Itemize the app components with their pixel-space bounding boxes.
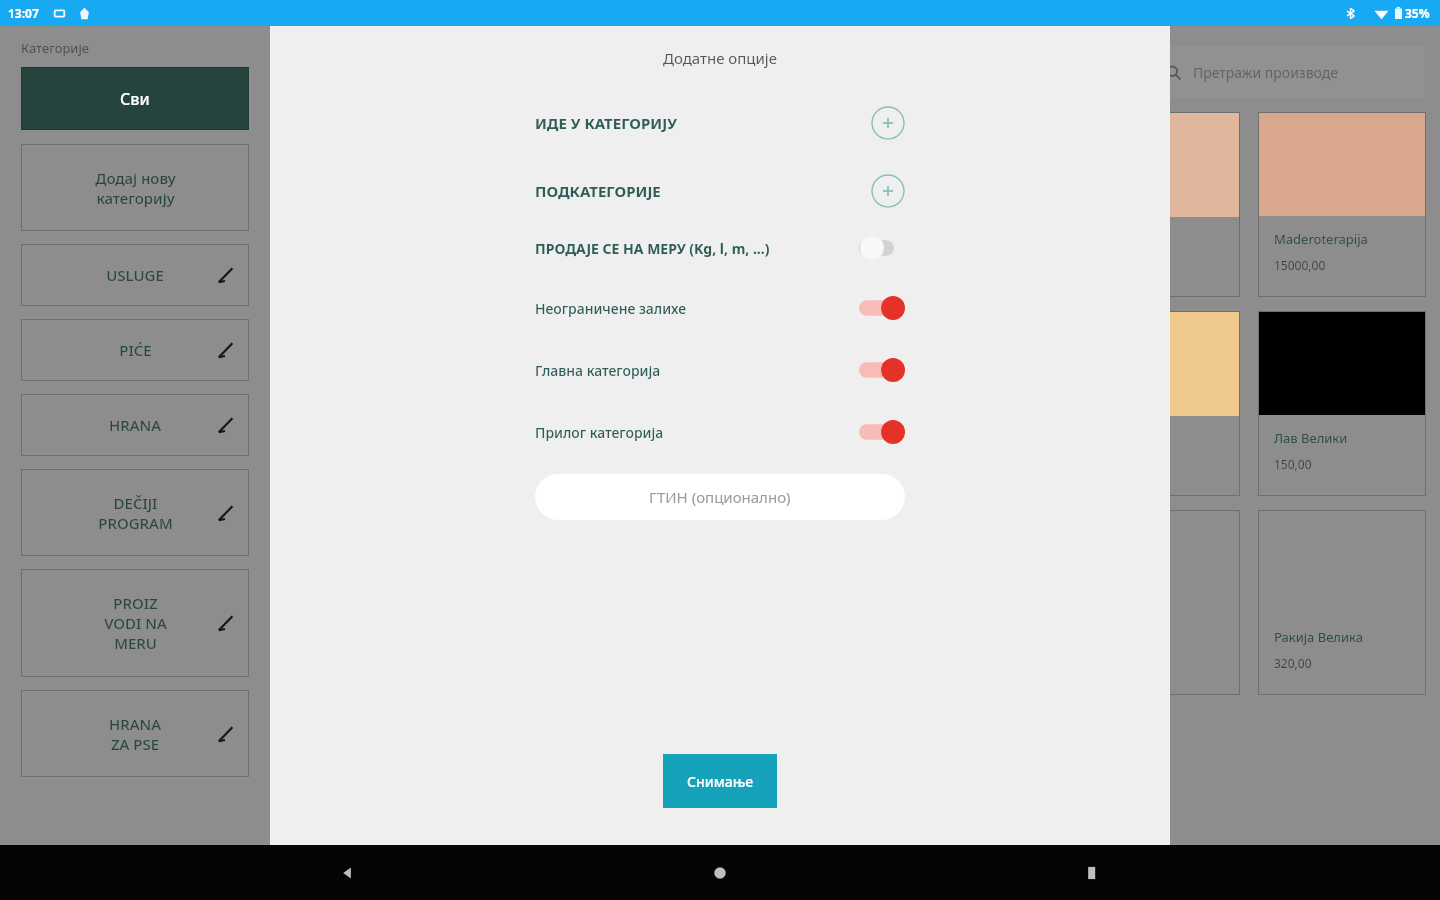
button[interactable]: PIĆE <box>21 319 249 381</box>
staticText: Додај нову категорију <box>95 168 176 208</box>
button[interactable]: ПРОДАЈЕ СЕ НА МЕРУ (Kg, l, m, ...) <box>535 233 905 263</box>
button[interactable] <box>1090 311 1240 496</box>
button[interactable]: Edit HRANA <box>216 415 236 435</box>
button[interactable]: Edit DEČIJI PROGRAM <box>216 503 236 523</box>
button[interactable]: Edit PROIZ VODI NA MERU <box>216 613 236 633</box>
button[interactable]: Главна категорија <box>535 355 905 385</box>
staticText: Ракија Велика <box>1274 628 1363 646</box>
staticText: DEČIJI PROGRAM <box>98 493 173 533</box>
staticText: ПРОДАЈЕ СЕ НА МЕРУ (Kg, l, m, ...) <box>535 239 770 258</box>
staticText: Снимање <box>687 772 754 791</box>
button[interactable] <box>1090 112 1240 297</box>
button[interactable]: ИДЕ У КАТЕГОРИЈУ <box>535 103 905 143</box>
staticText: Лав Велики <box>1274 429 1348 447</box>
staticText: ГТИН (опционално) <box>649 487 791 507</box>
button[interactable]: ГТИН (опционално) <box>535 474 905 520</box>
button[interactable]: DEČIJI PROGRAM <box>21 469 249 556</box>
button[interactable]: ПОДКАТЕГОРИЈЕ <box>535 171 905 211</box>
button[interactable]: Maderoterapija <box>1258 112 1426 297</box>
button[interactable]: USLUGE <box>21 244 249 306</box>
staticText: ИДЕ У КАТЕГОРИЈУ <box>535 113 677 133</box>
button[interactable]: ПРОДАЈЕ СЕ НА МЕРУ (Kg, l, m, ...) <box>859 235 905 261</box>
button[interactable]: Прилог категорија <box>859 419 905 445</box>
button[interactable]: Edit PIĆE <box>216 340 236 360</box>
button[interactable]: Back <box>324 849 372 897</box>
staticText: 35% <box>1405 5 1430 21</box>
staticText: Сви <box>120 88 150 110</box>
staticText: Главна категорија <box>535 361 661 380</box>
staticText: Прилог категорија <box>535 423 664 442</box>
button[interactable]: Edit USLUGE <box>216 265 236 285</box>
staticText: ПОДКАТЕГОРИЈЕ <box>535 181 661 201</box>
button[interactable]: Додај нову категорију <box>21 144 249 231</box>
button[interactable]: Прилог категорија <box>535 417 905 447</box>
button[interactable]: Претражи производе <box>286 46 1424 98</box>
button[interactable]: Home <box>696 849 744 897</box>
button[interactable]: PROIZ VODI NA MERU <box>21 569 249 677</box>
staticText: 320,00 <box>1274 655 1312 671</box>
button[interactable]: HRANA <box>21 394 249 456</box>
staticText: HRANA ZA PSE <box>109 714 161 754</box>
staticText: Додатне опције <box>663 48 777 68</box>
button[interactable]: Edit HRANA ZA PSE <box>216 724 236 744</box>
staticText: Неограничене залихе <box>535 299 687 318</box>
button[interactable]: Главна категорија <box>859 357 905 383</box>
button[interactable]: Неограничене залихе <box>535 293 905 323</box>
staticText: HRANA <box>109 415 161 435</box>
staticText: USLUGE <box>106 265 164 285</box>
staticText: 150,00 <box>1274 456 1312 472</box>
staticText: Maderoterapija <box>1274 230 1368 248</box>
staticText: PIĆE <box>119 340 152 360</box>
button[interactable]: Add: ПОДКАТЕГОРИЈЕ <box>871 174 905 208</box>
staticText: Категорије <box>21 39 89 57</box>
button[interactable]: Add: ИДЕ У КАТЕГОРИЈУ <box>871 106 905 140</box>
button[interactable]: Ракија Велика <box>1258 510 1426 695</box>
button[interactable]: Сви <box>21 67 249 130</box>
button[interactable]: Неограничене залихе <box>859 295 905 321</box>
button[interactable]: Лав Велики <box>1258 311 1426 496</box>
staticText: 15000,00 <box>1274 257 1326 273</box>
button[interactable]: Recents <box>1068 849 1116 897</box>
staticText: PROIZ VODI NA MERU <box>104 593 167 653</box>
button[interactable] <box>1090 510 1240 695</box>
staticText: 13:07 <box>8 5 39 21</box>
staticText: Претражи производе <box>1193 63 1338 82</box>
button[interactable]: HRANA ZA PSE <box>21 690 249 777</box>
button[interactable]: Снимање <box>663 754 777 808</box>
